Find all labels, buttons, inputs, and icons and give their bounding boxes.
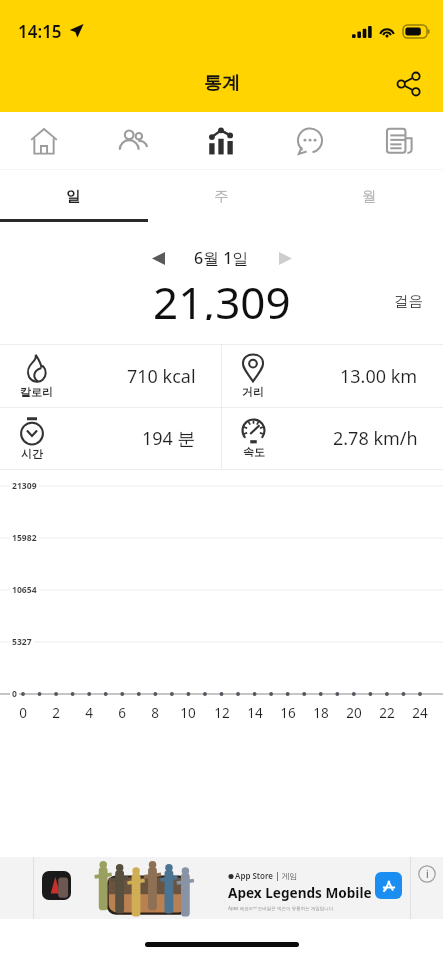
staticText: 24 — [408, 704, 432, 722]
staticText: 칼로리 — [20, 385, 53, 399]
staticText: 6 — [110, 704, 134, 722]
staticText: 710 kcal — [127, 364, 196, 389]
staticText: 21,309 — [153, 272, 291, 320]
staticText: 14:15 — [18, 20, 62, 43]
staticText: 14 — [243, 704, 267, 722]
staticText: 21309 — [12, 480, 37, 492]
staticText: 월 — [362, 187, 377, 205]
button[interactable]: 주 — [147, 170, 295, 222]
staticText: 0 — [12, 688, 17, 700]
staticText: 13.00 km — [340, 364, 418, 389]
staticText: 2.78 km/h — [333, 426, 418, 451]
staticText: 22 — [375, 704, 399, 722]
button[interactable]: News — [354, 112, 443, 170]
button[interactable]: Chat — [265, 112, 354, 170]
staticText: 10 — [176, 704, 200, 722]
button[interactable]: Share — [387, 62, 431, 106]
button[interactable]: 속도 — [221, 408, 443, 469]
staticText: 5327 — [12, 636, 32, 648]
button[interactable]: Previous day — [140, 240, 176, 276]
staticText: 0 — [11, 704, 35, 722]
button[interactable]: 시간 — [0, 408, 221, 469]
button[interactable]: Home — [0, 112, 88, 170]
staticText: 일 — [66, 187, 81, 205]
staticText: 통계 — [204, 72, 240, 95]
staticText: 4 — [77, 704, 101, 722]
staticText: 거리 — [242, 385, 264, 399]
staticText: 12 — [210, 704, 234, 722]
staticText: 6월 1일 — [194, 247, 249, 269]
staticText: 18 — [309, 704, 333, 722]
button[interactable]: 거리 — [221, 345, 443, 407]
staticText: 8 — [143, 704, 167, 722]
staticText: 20 — [342, 704, 366, 722]
staticText: i — [426, 867, 429, 881]
button[interactable]: Next day — [267, 240, 303, 276]
staticText: 16 — [276, 704, 300, 722]
staticText: 2 — [44, 704, 68, 722]
staticText: 주 — [214, 187, 229, 205]
staticText: Apex Legends Mobile — [228, 883, 372, 902]
button[interactable]: App Store | 게임 — [0, 857, 443, 919]
staticText: App Store | 게임 — [235, 870, 298, 881]
button[interactable]: Friends — [88, 112, 176, 170]
button[interactable]: 일 — [0, 170, 147, 222]
button[interactable]: Ad info — [411, 857, 443, 919]
staticText: 걸음 — [394, 292, 423, 310]
staticText: 15982 — [12, 532, 37, 544]
staticText: 194 분 — [142, 426, 196, 451]
staticText: 10654 — [12, 584, 37, 596]
staticText: 시간 — [21, 447, 43, 461]
staticText: Apex 레전드™ 모바일은 넥슨이 유통하는 게임입니다 — [228, 905, 334, 911]
button[interactable]: 칼로리 — [0, 345, 221, 407]
button[interactable]: 월 — [295, 170, 443, 222]
staticText: 속도 — [243, 445, 265, 459]
button[interactable]: Statistics — [176, 112, 265, 170]
